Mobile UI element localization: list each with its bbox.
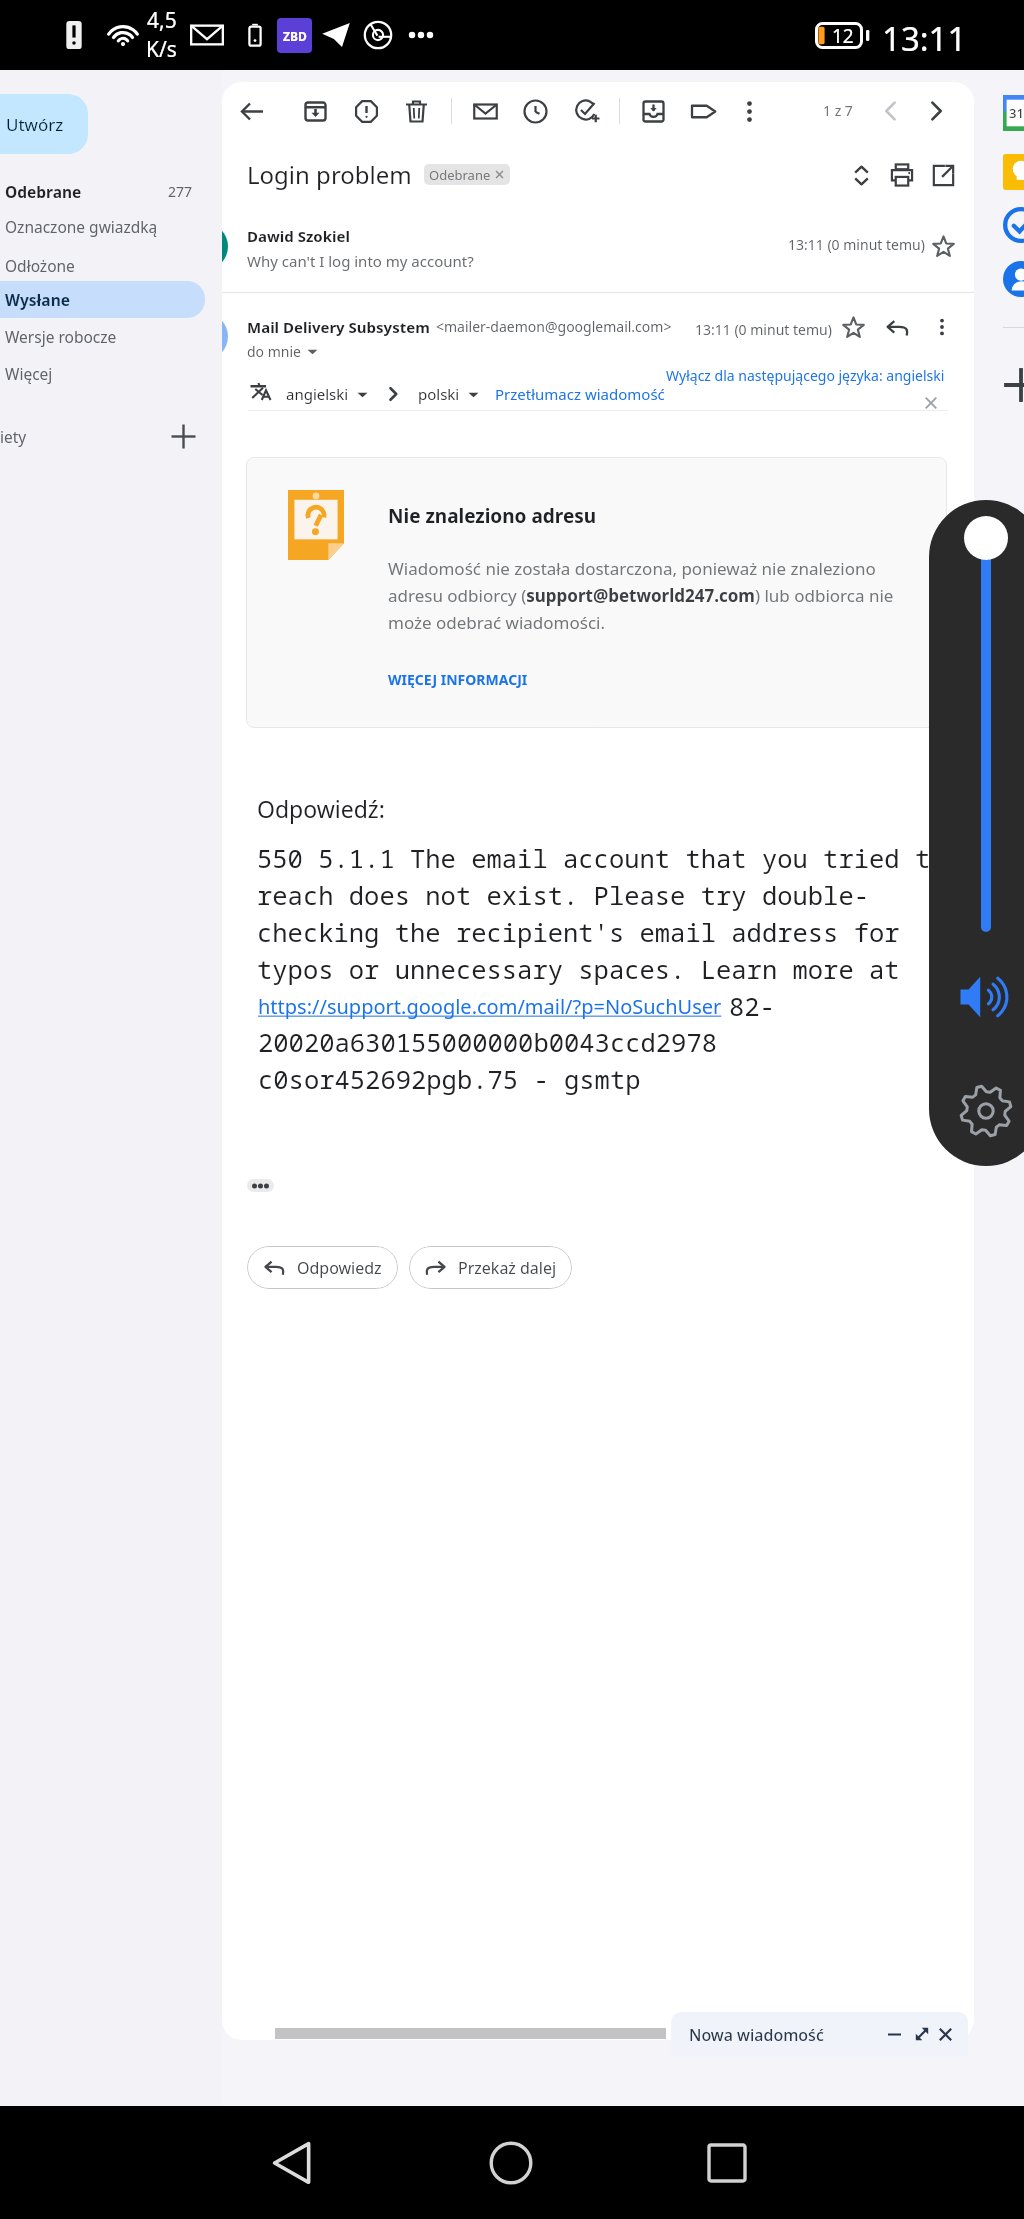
button[interactable]: Close translation bar <box>920 392 942 414</box>
button[interactable]: Reply <box>882 312 912 342</box>
button[interactable]: https://support.google.com/mail/?p=NoSuc… <box>258 993 722 1020</box>
staticText: angielski <box>286 384 349 404</box>
button[interactable]: Labels <box>684 92 722 130</box>
staticText: polski <box>418 384 460 404</box>
staticText: 12 <box>832 23 854 49</box>
staticText: Dawid Szokiel <box>247 226 350 246</box>
staticText: Wiadomość nie została dostarczona, ponie… <box>388 557 900 634</box>
button[interactable]: Older <box>872 92 910 130</box>
button[interactable]: Oznaczone gwiazdką <box>0 208 222 244</box>
staticText: Why can't I log into my account? <box>247 251 474 271</box>
button[interactable]: Add to tasks <box>568 92 606 130</box>
button[interactable]: do mnie <box>247 342 318 361</box>
staticText: 82- <box>729 989 775 1024</box>
staticText: do mnie <box>247 342 301 361</box>
button[interactable]: Archive <box>296 92 334 130</box>
button[interactable]: polski <box>418 384 479 404</box>
staticText: Wyłącz dla następującego języka: angiels… <box>666 366 945 385</box>
staticText: Odłożone <box>5 255 75 276</box>
button[interactable]: Minimize <box>881 2021 907 2047</box>
staticText: 31 <box>1009 104 1024 122</box>
button[interactable]: Odebrane <box>0 173 222 209</box>
button[interactable]: Back <box>233 92 271 130</box>
button[interactable]: Star message <box>838 312 868 342</box>
staticText: Utwórz <box>6 113 64 136</box>
staticText: Wysłane <box>5 289 70 310</box>
button[interactable]: Full screen <box>909 2021 935 2047</box>
staticText: Nowa wiadomość <box>689 2024 824 2046</box>
staticText: Odpowiedz <box>297 1257 382 1279</box>
button[interactable]: Home <box>466 2118 556 2208</box>
button[interactable]: Recents <box>682 2118 772 2208</box>
button[interactable]: Close <box>932 2021 958 2047</box>
button[interactable]: Calendar <box>1003 95 1024 131</box>
button[interactable]: Delete <box>397 92 435 130</box>
staticText: 13:11 <box>882 16 967 61</box>
staticText: K/s <box>146 35 177 64</box>
button[interactable]: Newer <box>917 92 955 130</box>
button[interactable]: Add <box>1003 367 1024 403</box>
button[interactable]: Dawid Szokiel <box>222 218 974 290</box>
staticText: <mailer-daemon@googlemail.com> <box>436 317 672 336</box>
staticText: c0sor452692pgb.75 - gsmtp <box>258 1062 641 1097</box>
staticText: Wersje robocze <box>5 326 117 347</box>
button[interactable]: Move to inbox <box>634 92 672 130</box>
button[interactable]: Snooze <box>516 92 554 130</box>
button[interactable]: angielski <box>286 384 368 404</box>
button[interactable]: Contacts <box>1003 261 1024 297</box>
button[interactable]: Odebrane <box>424 164 510 185</box>
staticText: 13:11 (0 minut temu) <box>695 320 832 339</box>
staticText: 1 z 7 <box>823 101 853 120</box>
button[interactable]: Wysłane <box>0 281 205 318</box>
staticText: 550 5.1.1 The email account that you tri… <box>257 841 947 986</box>
button[interactable]: Star <box>928 231 958 261</box>
button[interactable]: Back <box>248 2118 338 2208</box>
staticText: 277 <box>168 182 193 201</box>
button[interactable]: Więcej <box>0 355 222 391</box>
button[interactable]: Wersje robocze <box>0 318 222 354</box>
button[interactable]: Show trimmed content <box>247 1179 274 1192</box>
staticText: https://support.google.com/mail/?p=NoSuc… <box>258 993 722 1020</box>
staticText: Odebrane <box>429 166 491 184</box>
staticText: WIĘCEJ INFORMACJI <box>388 670 528 689</box>
staticText: Odebrane <box>5 181 82 202</box>
staticText: Więcej <box>5 363 53 384</box>
staticText: Przetłumacz wiadomość <box>495 384 665 404</box>
button[interactable]: Mark as unread <box>466 92 504 130</box>
button[interactable]: Keep <box>1003 154 1024 190</box>
staticText: ZBD <box>283 28 307 44</box>
staticText: Odpowiedź: <box>257 793 385 824</box>
button[interactable]: Wyłącz dla następującego języka: angiels… <box>666 366 945 385</box>
staticText: iety <box>0 426 27 447</box>
button[interactable]: Open in new window <box>924 156 962 194</box>
staticText: 20020a630155000000b0043ccd2978 <box>258 1025 718 1060</box>
button[interactable]: More options <box>927 312 957 342</box>
button[interactable]: Report spam <box>347 92 385 130</box>
button[interactable]: Przekaż dalej <box>409 1246 572 1289</box>
button[interactable]: Expand all <box>842 156 880 194</box>
button[interactable]: Tasks <box>1003 207 1024 243</box>
button[interactable]: WIĘCEJ INFORMACJI <box>388 670 528 689</box>
button[interactable]: Odpowiedz <box>247 1246 398 1289</box>
staticText: Login problem <box>247 158 412 191</box>
button[interactable]: iety <box>0 416 222 456</box>
button[interactable]: Sound settings <box>956 1081 1016 1141</box>
staticText: Przekaż dalej <box>458 1257 557 1279</box>
button[interactable]: Utwórz <box>0 94 88 154</box>
button[interactable]: Print <box>883 156 921 194</box>
staticText: Nie znaleziono adresu <box>388 503 597 529</box>
staticText: 4,5 <box>147 6 177 35</box>
staticText: Oznaczone gwiazdką <box>5 216 158 237</box>
button[interactable]: Przetłumacz wiadomość <box>495 384 665 404</box>
staticText: Mail Delivery Subsystem <box>247 317 430 337</box>
button[interactable]: More options <box>730 92 768 130</box>
button[interactable]: Odłożone <box>0 247 222 283</box>
staticText: 13:11 (0 minut temu) <box>788 235 925 254</box>
